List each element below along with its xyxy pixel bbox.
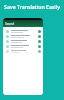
staticText: Saved [5, 22, 14, 26]
staticText: Save Translation Easily [0, 3, 64, 10]
button[interactable] [3, 44, 43, 49]
button[interactable] [3, 49, 43, 54]
button[interactable] [3, 34, 43, 39]
button[interactable] [3, 29, 43, 34]
button[interactable] [3, 39, 43, 44]
